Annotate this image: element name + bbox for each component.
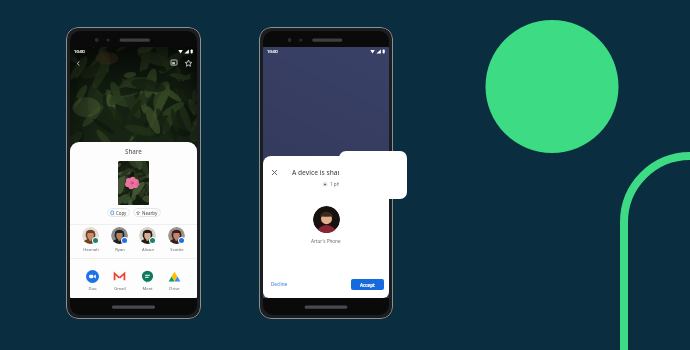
- button[interactable]: Cast: [169, 58, 179, 68]
- staticText: Accept: [360, 282, 375, 288]
- button[interactable]: Drive: [167, 270, 182, 292]
- button[interactable]: Hannah: [81, 227, 100, 253]
- staticText: A device is sharing: [292, 168, 351, 177]
- button[interactable]: Back: [73, 58, 83, 68]
- button[interactable]: Meet: [140, 270, 155, 292]
- staticText: Share: [125, 147, 142, 155]
- staticText: Ryan: [115, 247, 125, 253]
- button[interactable]: Ryan: [110, 227, 129, 253]
- staticText: Decline: [271, 281, 288, 287]
- button[interactable]: Decline: [268, 278, 291, 290]
- button[interactable]: Alison: [138, 227, 157, 253]
- staticText: Copy: [116, 210, 127, 216]
- button[interactable]: Duo: [85, 270, 100, 292]
- button[interactable]: Copy: [107, 208, 130, 217]
- staticText: Meet: [142, 286, 153, 292]
- staticText: Alison: [142, 247, 154, 253]
- staticText: Hannah: [83, 247, 99, 253]
- staticText: Scottie: [170, 247, 184, 253]
- button[interactable]: Nearby: [133, 208, 161, 217]
- button[interactable]: Gmail: [112, 270, 127, 292]
- staticText: 1 photo: [330, 181, 347, 187]
- staticText: Nearby: [142, 210, 158, 216]
- button[interactable]: Close: [268, 166, 280, 178]
- button[interactable]: Accept: [351, 279, 384, 290]
- button[interactable]: Scottie: [167, 227, 186, 253]
- staticText: Gmail: [114, 286, 126, 292]
- staticText: 10:00: [74, 49, 85, 55]
- staticText: 10:00: [267, 49, 278, 55]
- staticText: Drive: [169, 286, 180, 292]
- button[interactable]: Favorite: [183, 58, 193, 68]
- staticText: Artur's Phone: [311, 238, 341, 244]
- staticText: Duo: [88, 286, 97, 292]
